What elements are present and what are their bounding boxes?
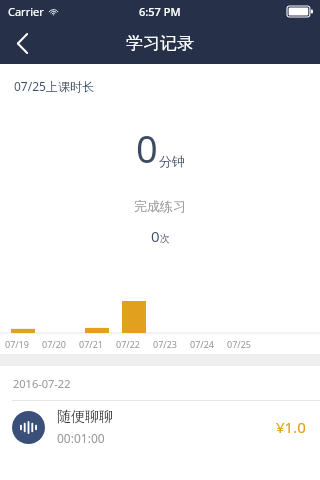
staticText: 0 [151, 226, 160, 246]
staticText: 完成练习 [0, 198, 320, 214]
staticText: 分钟 [159, 153, 185, 169]
staticText: Carrier [8, 4, 44, 19]
staticText: 07/22 [116, 338, 140, 350]
staticText: 6:57 PM [139, 4, 181, 19]
staticText: 07/23 [153, 338, 177, 350]
staticText: 学习记录 [126, 33, 194, 54]
staticText: 次 [160, 232, 170, 245]
staticText: 00:01:00 [57, 430, 105, 446]
staticText: ¥1.0 [276, 417, 306, 437]
staticText: 07/24 [190, 338, 214, 350]
button[interactable]: 随便聊聊 [0, 401, 320, 453]
staticText: 07/25上课时长 [14, 78, 94, 94]
staticText: 07/21 [79, 338, 103, 350]
staticText: 0 [136, 122, 158, 174]
staticText: 07/19 [5, 338, 29, 350]
staticText: 07/25 [227, 338, 251, 350]
staticText: 07/20 [42, 338, 66, 350]
staticText: 随便聊聊 [57, 408, 113, 426]
button[interactable]: Back [0, 22, 44, 64]
staticText: 2016-07-22 [13, 376, 71, 391]
